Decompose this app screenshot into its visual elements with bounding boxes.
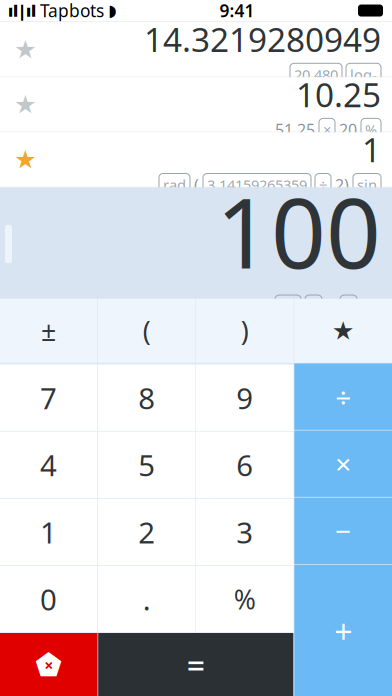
staticText: 25 [279, 297, 297, 318]
staticText: 7 [40, 378, 57, 417]
staticText: 50 [361, 296, 381, 319]
staticText: 100 [216, 168, 381, 295]
staticText: 1 [40, 512, 57, 551]
staticText: ÷ [319, 175, 327, 194]
button[interactable]: Multiply [294, 430, 392, 497]
staticText: 0 [40, 580, 57, 619]
staticText: ) [241, 313, 249, 348]
staticText: × [335, 445, 351, 482]
button[interactable]: ★ [0, 132, 392, 187]
staticText: 1 [362, 127, 381, 171]
button[interactable]: 2 [98, 499, 195, 565]
staticText: 2 [138, 512, 155, 551]
staticText: % [234, 581, 256, 617]
staticText: Tapbots [40, 0, 104, 22]
staticText: ★ [332, 316, 355, 345]
button[interactable]: ( [98, 299, 195, 363]
button[interactable]: 8 [98, 365, 195, 431]
staticText: ◗ [108, 1, 116, 20]
button[interactable]: ) [196, 299, 294, 363]
staticText: = [187, 644, 205, 686]
staticText: × [44, 654, 53, 676]
button[interactable]: Delete [0, 633, 97, 696]
button[interactable]: 9 [196, 365, 294, 431]
button[interactable]: 5 [98, 432, 195, 498]
button[interactable]: 6 [196, 432, 294, 498]
staticText: ± [41, 313, 56, 348]
staticText: log₂ [350, 65, 377, 84]
staticText: sin [357, 175, 377, 194]
staticText: 8 [138, 378, 155, 417]
staticText: + [334, 610, 352, 653]
staticText: ıl|ıl [8, 0, 36, 21]
staticText: × [309, 297, 318, 318]
staticText: ÷ [335, 378, 351, 415]
button[interactable]: Divide [294, 363, 392, 430]
staticText: 14.3219280949 [144, 17, 381, 61]
button[interactable]: ★ [0, 22, 392, 77]
button[interactable]: 7 [0, 365, 97, 431]
staticText: + [344, 297, 353, 318]
button[interactable]: 0 [0, 566, 97, 632]
staticText: − [335, 512, 351, 549]
button[interactable]: Equals [98, 633, 293, 696]
staticText: 10.25 [296, 72, 381, 116]
staticText: 9:41 [219, 0, 254, 22]
staticText: ⬟ [35, 648, 62, 682]
button[interactable]: Plus minus [0, 299, 97, 363]
staticText: ( [143, 313, 151, 348]
staticText: 51.25 [275, 119, 315, 140]
staticText: 5 [138, 445, 155, 484]
button[interactable]: 1 [0, 499, 97, 565]
staticText: × [323, 120, 331, 139]
staticText: ★ [14, 90, 37, 119]
staticText: % [365, 120, 377, 139]
staticText: ★ [14, 35, 37, 64]
button[interactable]: Plus [294, 565, 392, 696]
button[interactable]: Favorite [294, 299, 392, 363]
button[interactable]: % [196, 566, 294, 632]
button[interactable]: 4 [0, 432, 97, 498]
staticText: 2) [335, 174, 349, 195]
staticText: 4 [40, 445, 57, 484]
staticText: 20 [339, 119, 357, 140]
staticText: ( [194, 174, 199, 195]
button[interactable]: Minus [294, 498, 392, 564]
staticText: 3.14159265359 [207, 175, 307, 194]
staticText: ★ [14, 145, 37, 174]
staticText: 20,480 [294, 65, 338, 84]
button[interactable]: 3 [196, 499, 294, 565]
staticText: . [143, 580, 151, 619]
button[interactable]: . [98, 566, 195, 632]
staticText: rad [163, 175, 186, 194]
staticText: 3 [236, 512, 253, 551]
staticText: 2 [326, 296, 336, 319]
staticText: 6 [236, 445, 253, 484]
button[interactable]: ★ [0, 77, 392, 132]
staticText: 9 [236, 378, 253, 417]
